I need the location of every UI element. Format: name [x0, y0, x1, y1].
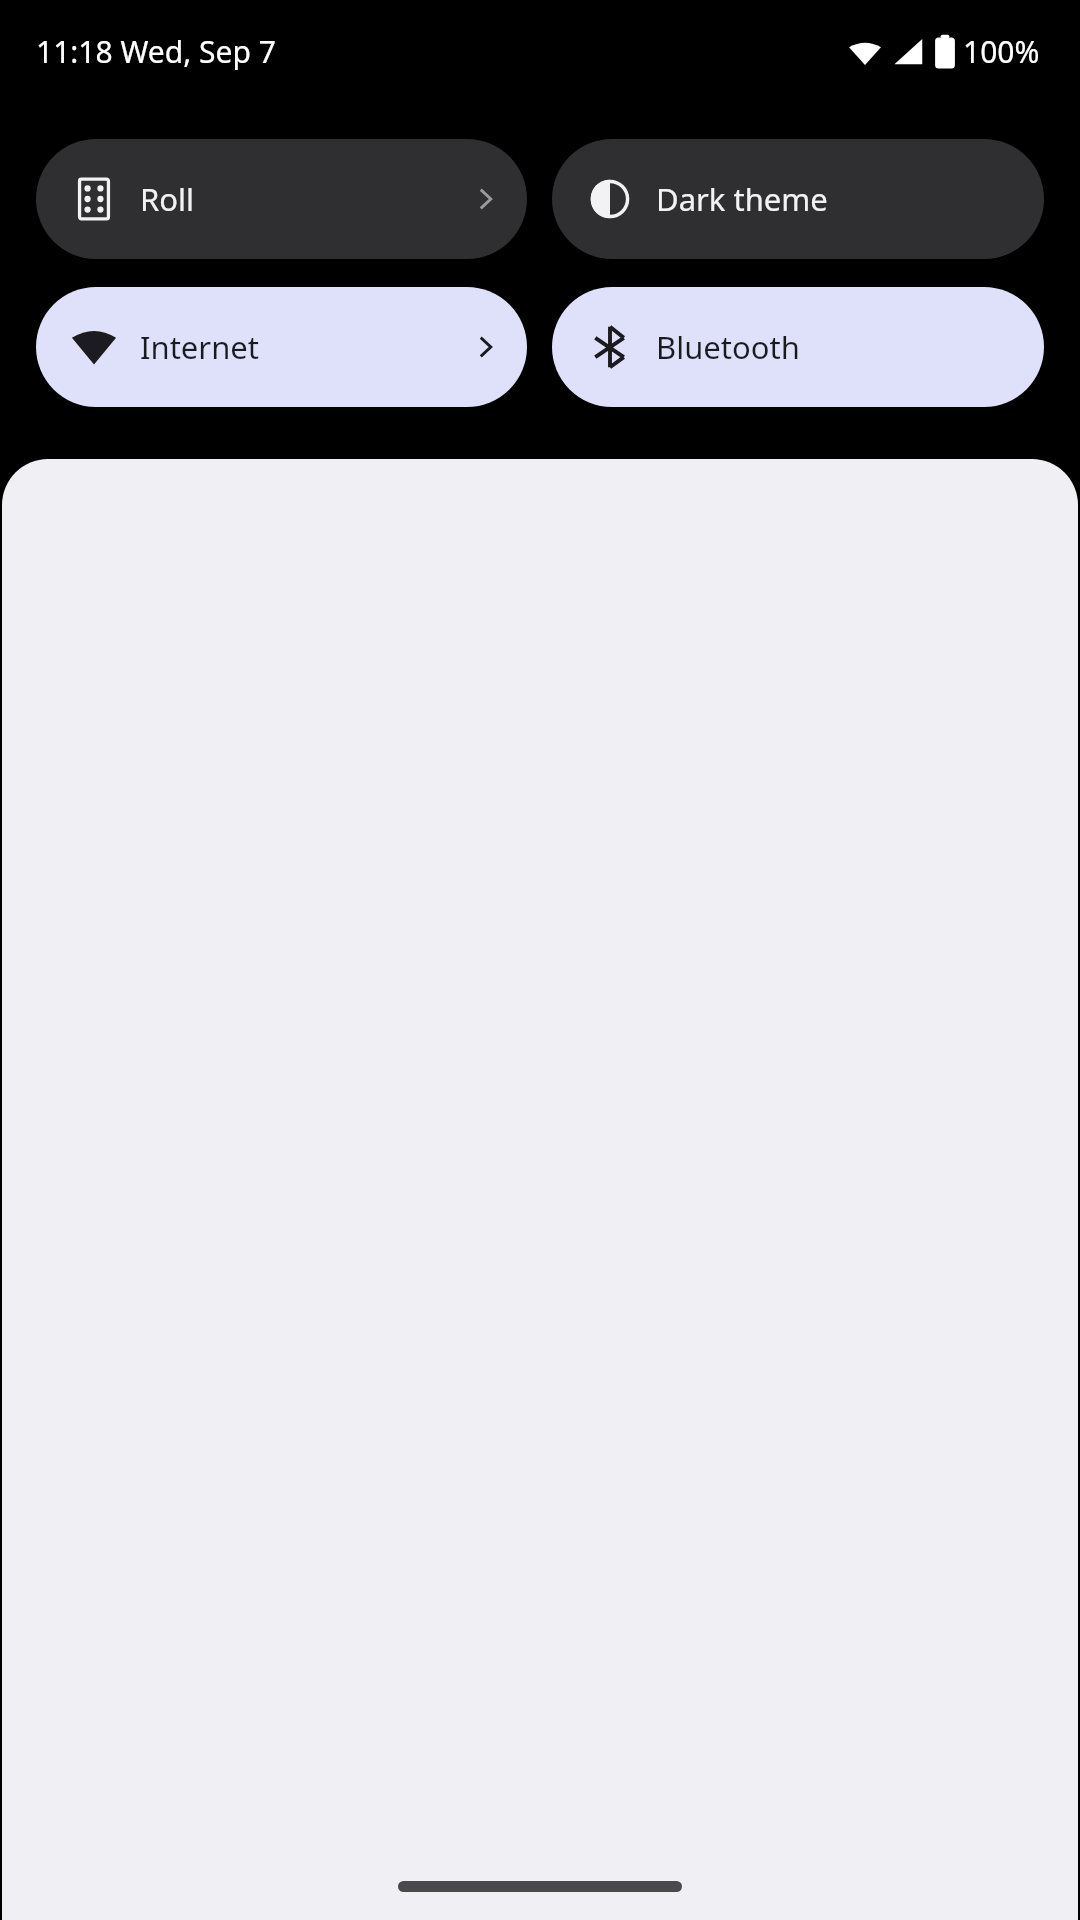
staticText: 11:18 Wed, Sep 7	[36, 31, 276, 72]
staticText: 100%	[963, 31, 1040, 72]
button[interactable]: Internet	[36, 287, 527, 407]
staticText: Dark theme	[656, 178, 988, 220]
button[interactable]: Dark theme	[552, 139, 1044, 259]
button[interactable]: Roll	[36, 139, 527, 259]
staticText: Internet	[140, 326, 471, 368]
staticText: Bluetooth	[656, 326, 988, 368]
staticText: Roll	[140, 178, 471, 220]
button[interactable]: Bluetooth	[552, 287, 1044, 407]
